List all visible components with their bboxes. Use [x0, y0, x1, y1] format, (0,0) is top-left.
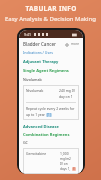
staticText: 240 mg IV [59, 88, 76, 93]
staticText: day on 1 [59, 94, 73, 99]
staticText: [1] [47, 113, 51, 117]
staticText: IV on [60, 162, 68, 166]
staticText: Adjuvant Therapy [23, 59, 59, 64]
staticText: more [71, 42, 79, 46]
staticText: 8 [73, 167, 75, 171]
staticText: 9:41 [24, 32, 31, 37]
staticText: days 1, [60, 167, 71, 171]
staticText: Repeat cycle every 2 weeks for [26, 106, 75, 111]
staticText: 1,000 [60, 151, 69, 156]
button[interactable]: [1] [47, 113, 51, 117]
staticText: Bladder Cancer [23, 41, 56, 47]
staticText: Nivolumab [26, 88, 59, 93]
staticText: mg/m2 [60, 157, 71, 161]
staticText: TABULAR INFO [25, 4, 77, 13]
staticText: up to 1 year [26, 112, 45, 117]
button[interactable]: Settings [64, 42, 69, 47]
staticText: Advanced Disease [23, 124, 59, 129]
button[interactable]: Bladder Cancer [23, 41, 79, 47]
staticText: Nivolumab [23, 77, 42, 82]
staticText: Gemcitabine [26, 151, 60, 156]
staticText: Indications / Uses [23, 50, 53, 55]
staticText: Single Agent Regimens [23, 68, 69, 73]
button[interactable]: Gemcitabine [26, 151, 76, 171]
staticText: GC [23, 140, 28, 145]
staticText: Easy Analysis & Decision Making [5, 15, 96, 23]
button[interactable]: Nivolumab [26, 88, 76, 117]
staticText: Combination Regimens [23, 132, 70, 137]
